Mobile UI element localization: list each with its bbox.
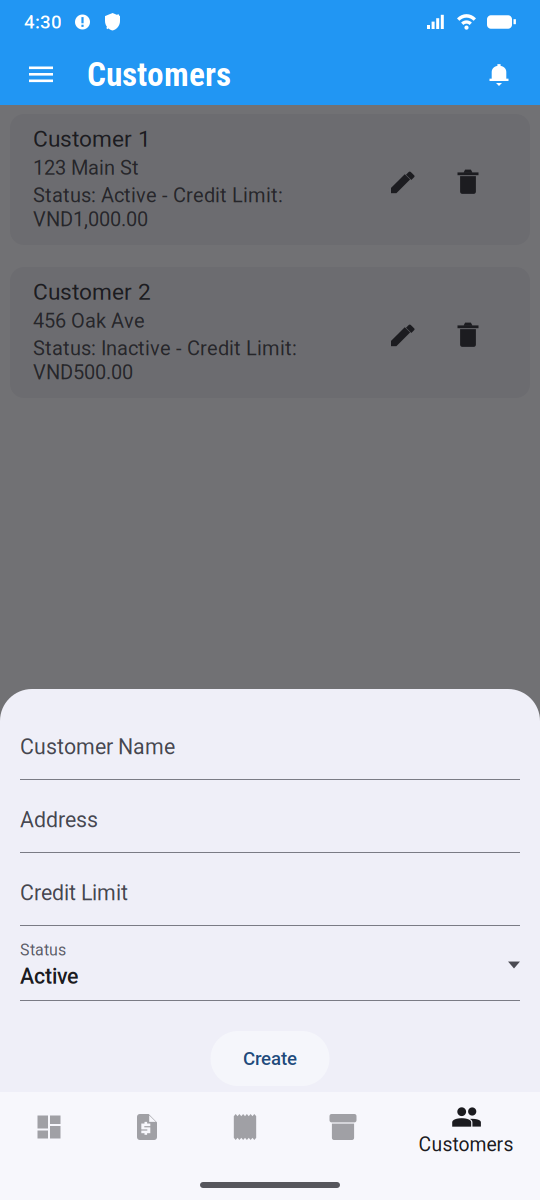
staticText: Customer Name xyxy=(20,734,175,759)
button[interactable]: Edit Customer 2 xyxy=(379,306,427,354)
staticText: 4:30 xyxy=(24,11,62,33)
staticText: Active xyxy=(20,964,78,989)
staticText: Status: Inactive - Credit Limit: xyxy=(33,337,297,360)
staticText: Credit Limit xyxy=(20,880,128,905)
staticText: 456 Oak Ave xyxy=(33,309,145,333)
staticText: Customer 1 xyxy=(33,126,151,152)
staticText: Status xyxy=(20,941,66,959)
staticText: VND500.00 xyxy=(33,361,133,384)
staticText: Customers xyxy=(87,55,231,94)
button[interactable]: Inventory xyxy=(294,1098,392,1156)
button[interactable]: Create xyxy=(210,1031,329,1086)
staticText: Address xyxy=(20,807,98,832)
button[interactable]: Dashboard xyxy=(0,1098,98,1156)
button[interactable]: Delete Customer 2 xyxy=(444,306,492,354)
staticText: Customer 2 xyxy=(33,279,151,305)
button[interactable]: Notifications xyxy=(474,47,524,101)
staticText: 123 Main St xyxy=(33,156,139,180)
button[interactable]: Menu xyxy=(14,47,68,101)
button[interactable]: Delete Customer 1 xyxy=(444,153,492,201)
button[interactable]: Quotes xyxy=(98,1098,196,1156)
staticText: Status: Active - Credit Limit: xyxy=(33,184,283,207)
staticText: Create xyxy=(243,1048,297,1069)
button[interactable]: Invoices xyxy=(196,1098,294,1156)
button[interactable]: Edit Customer 1 xyxy=(379,153,427,201)
staticText: Customers xyxy=(418,1133,513,1156)
staticText: VND1,000.00 xyxy=(33,208,148,231)
button[interactable]: Customers xyxy=(392,1098,540,1156)
